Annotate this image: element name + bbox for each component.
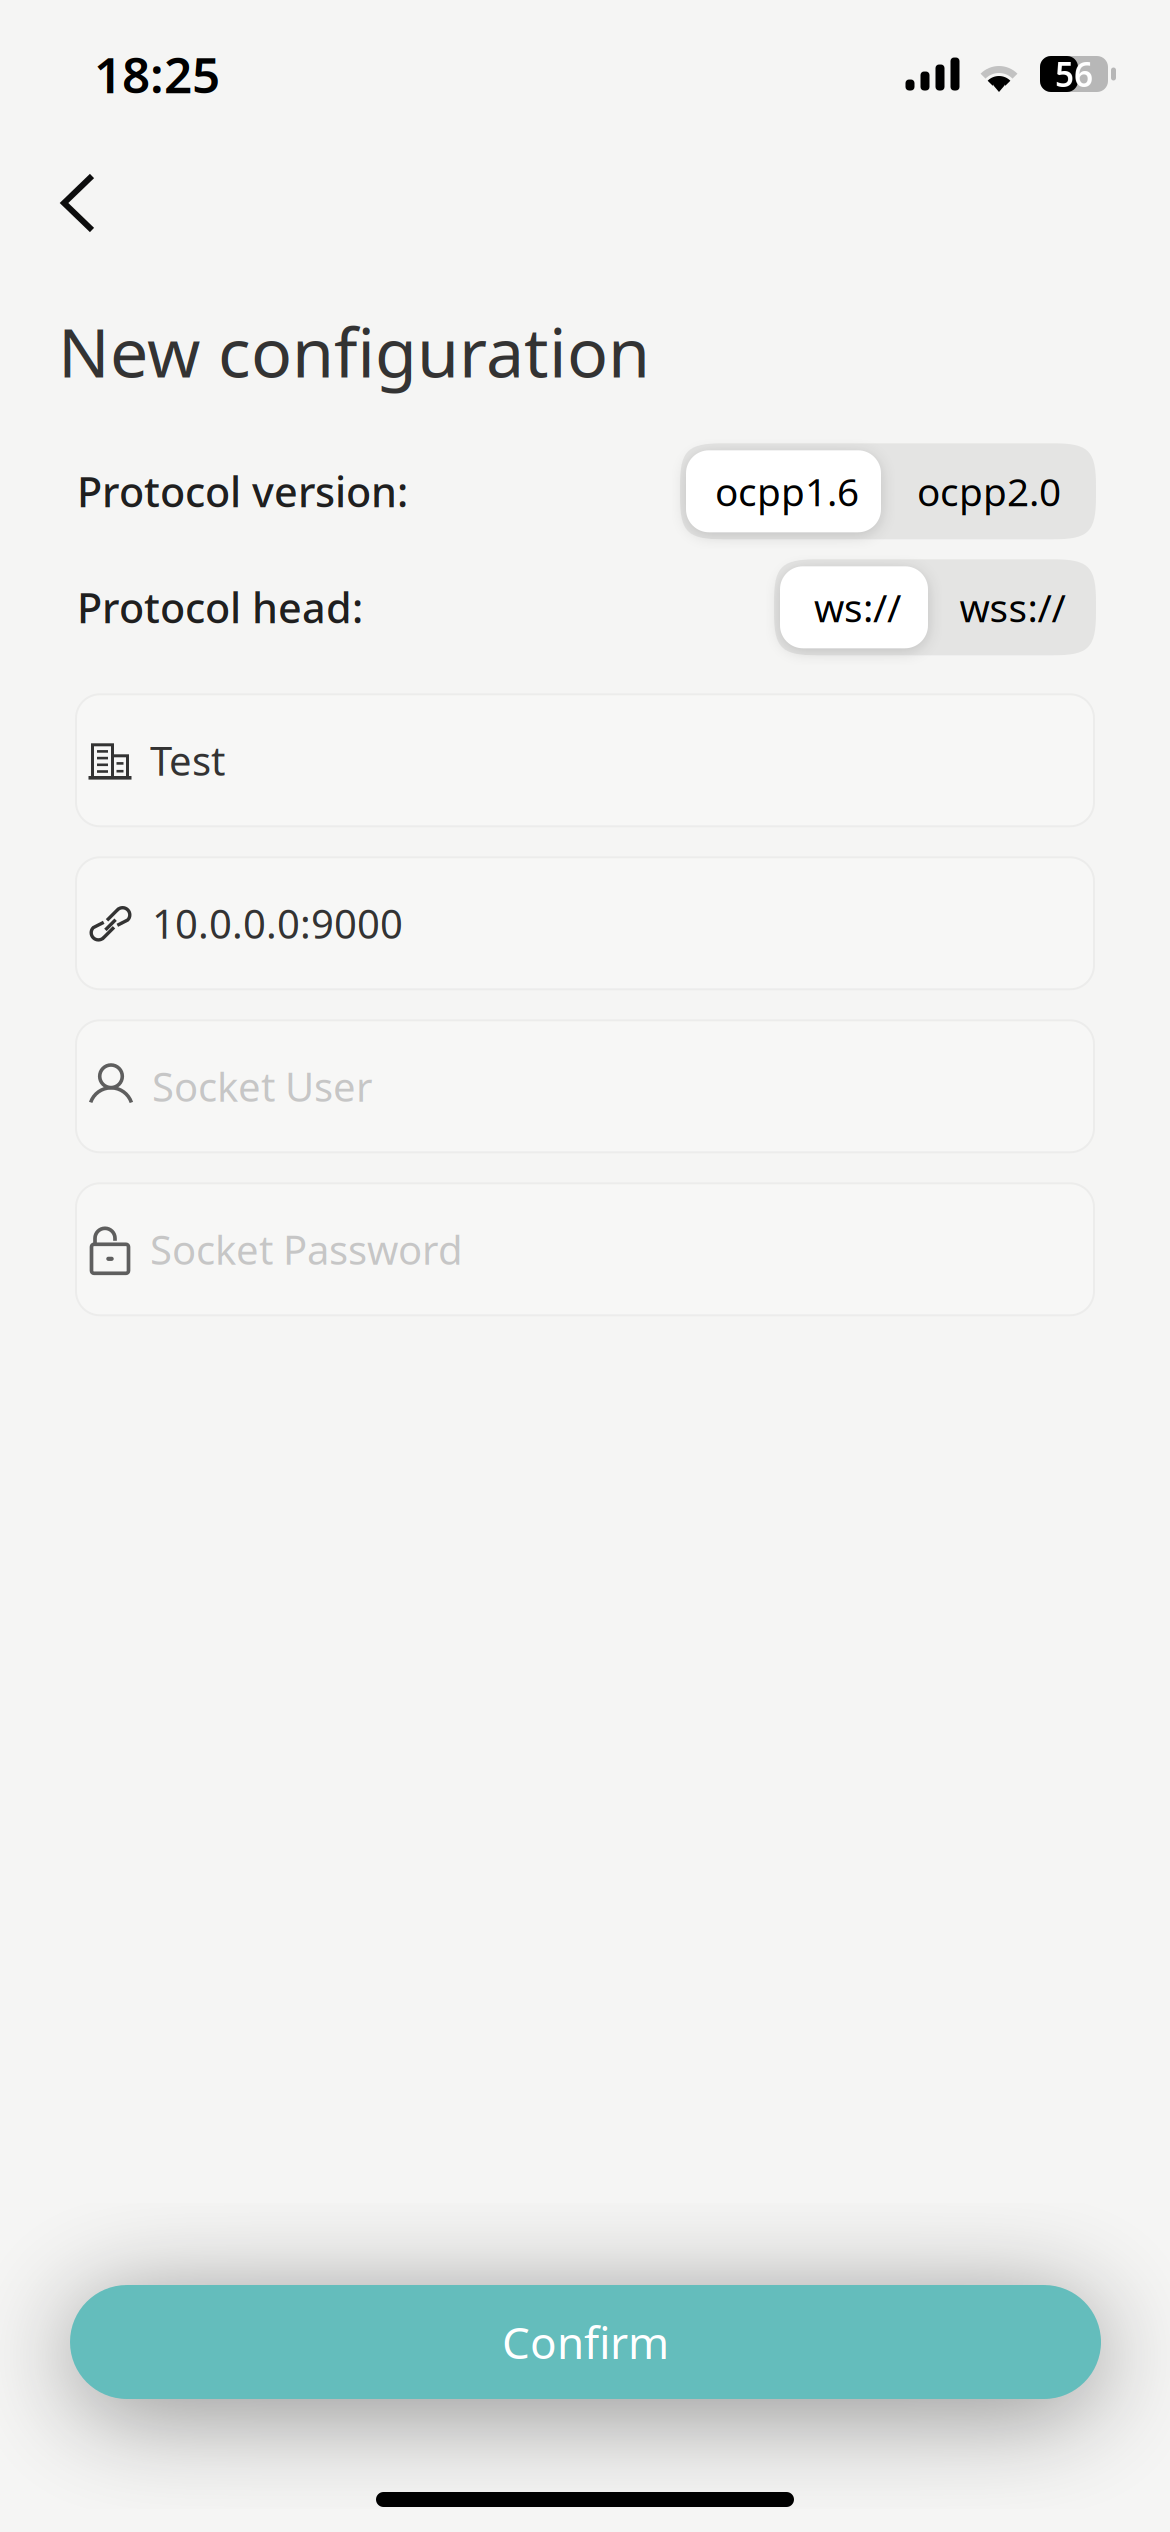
staticText: ocpp1.6	[715, 466, 859, 517]
button[interactable]: Confirm	[70, 2285, 1101, 2399]
staticText: 10.0.0.0:9000	[152, 897, 403, 950]
staticText: Confirm	[502, 2313, 669, 2371]
staticText: wss://	[959, 582, 1065, 633]
button[interactable]: Socket Password	[76, 1183, 1094, 1315]
button[interactable]: Test	[76, 694, 1094, 826]
staticText: Test	[150, 734, 225, 787]
button[interactable]: Socket User	[76, 1020, 1094, 1152]
button[interactable]: ocpp2.0	[888, 449, 1090, 533]
staticText: ws://	[814, 582, 901, 633]
staticText: New configuration	[58, 306, 650, 396]
button[interactable]: Back	[0, 148, 135, 258]
button[interactable]: 10.0.0.0:9000	[76, 857, 1094, 989]
button[interactable]: wss://	[935, 565, 1090, 649]
staticText: 18:25	[94, 41, 220, 107]
button[interactable]: ocpp1.6	[686, 449, 888, 533]
button[interactable]: ws://	[780, 565, 935, 649]
staticText: Socket Password	[150, 1223, 463, 1276]
staticText: Protocol head:	[77, 580, 363, 635]
staticText: Socket User	[152, 1060, 373, 1113]
staticText: Protocol version:	[77, 464, 408, 519]
staticText: 56	[1055, 52, 1093, 96]
staticText: ocpp2.0	[917, 466, 1061, 517]
